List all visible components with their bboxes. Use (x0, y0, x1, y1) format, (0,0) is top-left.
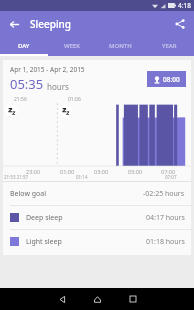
staticText: 08:00 (163, 75, 180, 84)
staticText: 07:00 (161, 168, 176, 175)
button[interactable]: Back (45, 288, 80, 310)
button[interactable]: Recents (115, 288, 150, 310)
button[interactable]: 08:00 (147, 71, 186, 87)
button[interactable]: Deep sleep (3, 206, 191, 229)
staticText: Apr 1, 2015 - Apr 2, 2015 (10, 65, 85, 74)
staticText: 01:14 (76, 174, 88, 180)
staticText: 21:56 (14, 96, 27, 103)
staticText: -02:25 hours (143, 189, 185, 199)
staticText: 23:00 (26, 168, 41, 175)
button[interactable]: WEEK (48, 37, 96, 54)
staticText: Deep sleep (26, 213, 63, 223)
staticText: 01:18 hours (146, 237, 185, 247)
staticText: hours (47, 81, 69, 92)
button[interactable]: Share (171, 15, 189, 33)
staticText: 05:35 (10, 75, 44, 93)
staticText: 05:00 (128, 168, 143, 175)
staticText: 01:00 (60, 168, 75, 175)
staticText: MONTH (109, 42, 132, 50)
staticText: Light sleep (26, 237, 62, 247)
staticText: 01:06 (68, 96, 81, 103)
button[interactable]: MONTH (96, 37, 145, 54)
button[interactable]: DAY (0, 37, 48, 54)
staticText: 4:18 (178, 1, 191, 10)
staticText: DAY (18, 42, 30, 50)
staticText: Sleeping (30, 17, 72, 31)
button[interactable]: Back (5, 15, 23, 33)
button[interactable]: YEAR (145, 37, 194, 54)
staticText: WEEK (64, 42, 81, 50)
button[interactable]: Light sleep (3, 230, 191, 253)
staticText: 04:17 hours (146, 213, 185, 223)
staticText: Below goal (10, 189, 46, 199)
button[interactable]: Below goal (3, 182, 191, 205)
staticText: YEAR (162, 42, 177, 50)
staticText: 21:53 21:57 (4, 174, 29, 180)
staticText: 07:07 (165, 174, 177, 180)
staticText: 03:00 (94, 168, 109, 175)
button[interactable]: Home (80, 288, 115, 310)
